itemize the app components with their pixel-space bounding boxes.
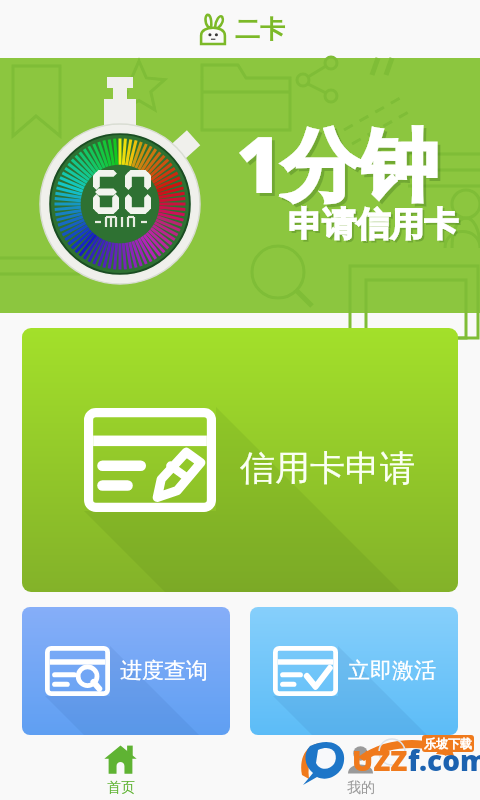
button[interactable]: 进度查询 (22, 607, 230, 735)
staticText: 申请信用卡 (290, 205, 460, 248)
button[interactable]: 首页 (0, 735, 240, 800)
staticText: 我的 (347, 779, 375, 797)
staticText: UZZ (352, 741, 408, 779)
button[interactable]: 信用卡申请 (22, 328, 458, 592)
button[interactable]: 二卡 (196, 13, 285, 45)
staticText: 乐坡下载 (424, 736, 472, 751)
button[interactable]: 立即激活 (250, 607, 458, 735)
button[interactable]: 我的 (240, 735, 480, 800)
staticText: 进度查询 (120, 657, 208, 685)
staticText: 信用卡申请 (240, 446, 415, 490)
staticText: 立即激活 (348, 657, 436, 685)
staticText: 二卡 (235, 14, 285, 45)
staticText: 1分钟 (239, 113, 441, 220)
staticText: 首页 (107, 779, 135, 797)
staticText: 1分钟 (236, 110, 438, 217)
staticText: f.com (408, 741, 480, 779)
staticText: 申请信用卡 (288, 203, 458, 246)
